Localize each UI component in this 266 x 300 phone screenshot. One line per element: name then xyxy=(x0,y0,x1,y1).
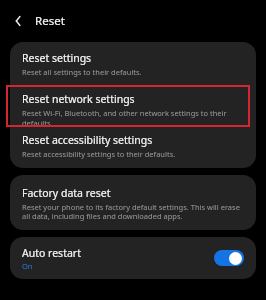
button[interactable]: Auto restart xyxy=(10,237,256,279)
staticText: Reset your phone to its factory default … xyxy=(22,202,244,222)
staticText: Reset accessibility settings xyxy=(22,133,153,147)
button[interactable]: Factory data reset xyxy=(10,175,256,230)
staticText: Reset network settings xyxy=(22,92,135,106)
staticText: On xyxy=(22,261,33,271)
button[interactable]: Back xyxy=(5,8,31,34)
staticText: Auto restart xyxy=(22,246,81,260)
button[interactable]: Reset settings xyxy=(10,42,256,86)
button[interactable]: Reset accessibility settings xyxy=(10,126,256,168)
staticText: Reset accessibility settings to their de… xyxy=(22,149,176,159)
staticText: Reset Wi-Fi, Bluetooth, and other networ… xyxy=(22,108,244,126)
button[interactable]: Auto restart, on xyxy=(214,250,244,266)
button[interactable]: Reset network settings xyxy=(10,86,256,126)
staticText: Reset all settings to their defaults. xyxy=(22,67,142,77)
staticText: Reset settings xyxy=(22,51,92,65)
staticText: Factory data reset xyxy=(22,186,111,200)
staticText: Reset xyxy=(35,13,65,29)
